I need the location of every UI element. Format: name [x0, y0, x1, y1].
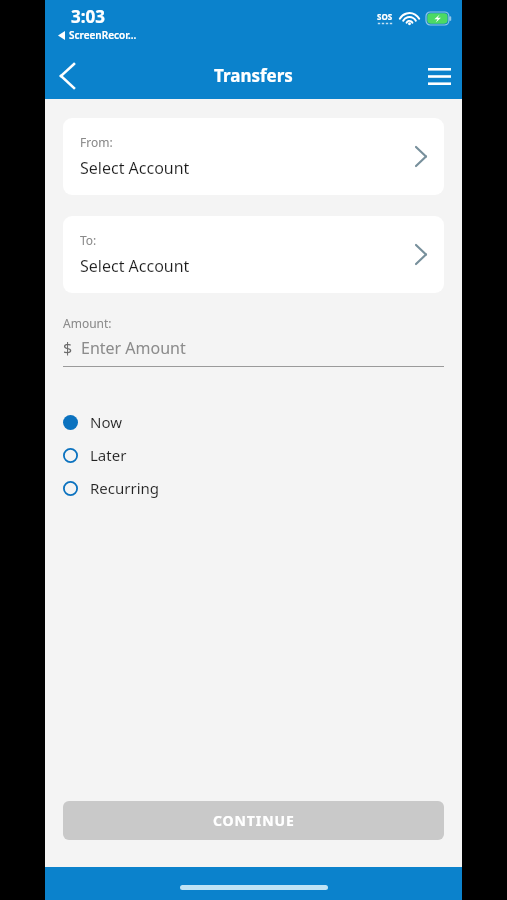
- staticText: Now: [90, 412, 122, 432]
- button[interactable]: Amount:: [63, 315, 444, 367]
- staticText: Select Account: [80, 255, 190, 277]
- button[interactable]: From:: [63, 118, 444, 195]
- staticText: $: [63, 337, 73, 359]
- button[interactable]: Now: [63, 411, 444, 433]
- staticText: Recurring: [90, 478, 160, 498]
- staticText: Transfers: [214, 64, 293, 87]
- staticText: SOS: [377, 11, 393, 22]
- staticText: ScreenRecor...: [69, 28, 137, 42]
- staticText: Enter Amount: [81, 337, 186, 359]
- staticText: Select Account: [80, 157, 190, 179]
- button[interactable]: Menu: [416, 53, 462, 99]
- button[interactable]: To:: [63, 216, 444, 293]
- button[interactable]: CONTINUE: [63, 801, 444, 840]
- staticText: 3:03: [71, 5, 105, 28]
- button[interactable]: Back: [45, 54, 89, 98]
- staticText: To:: [80, 232, 97, 248]
- staticText: Amount:: [63, 315, 112, 331]
- staticText: From:: [80, 134, 113, 150]
- button[interactable]: Recurring: [63, 477, 444, 499]
- button[interactable]: Later: [63, 444, 444, 466]
- staticText: Later: [90, 445, 127, 465]
- staticText: CONTINUE: [213, 811, 295, 830]
